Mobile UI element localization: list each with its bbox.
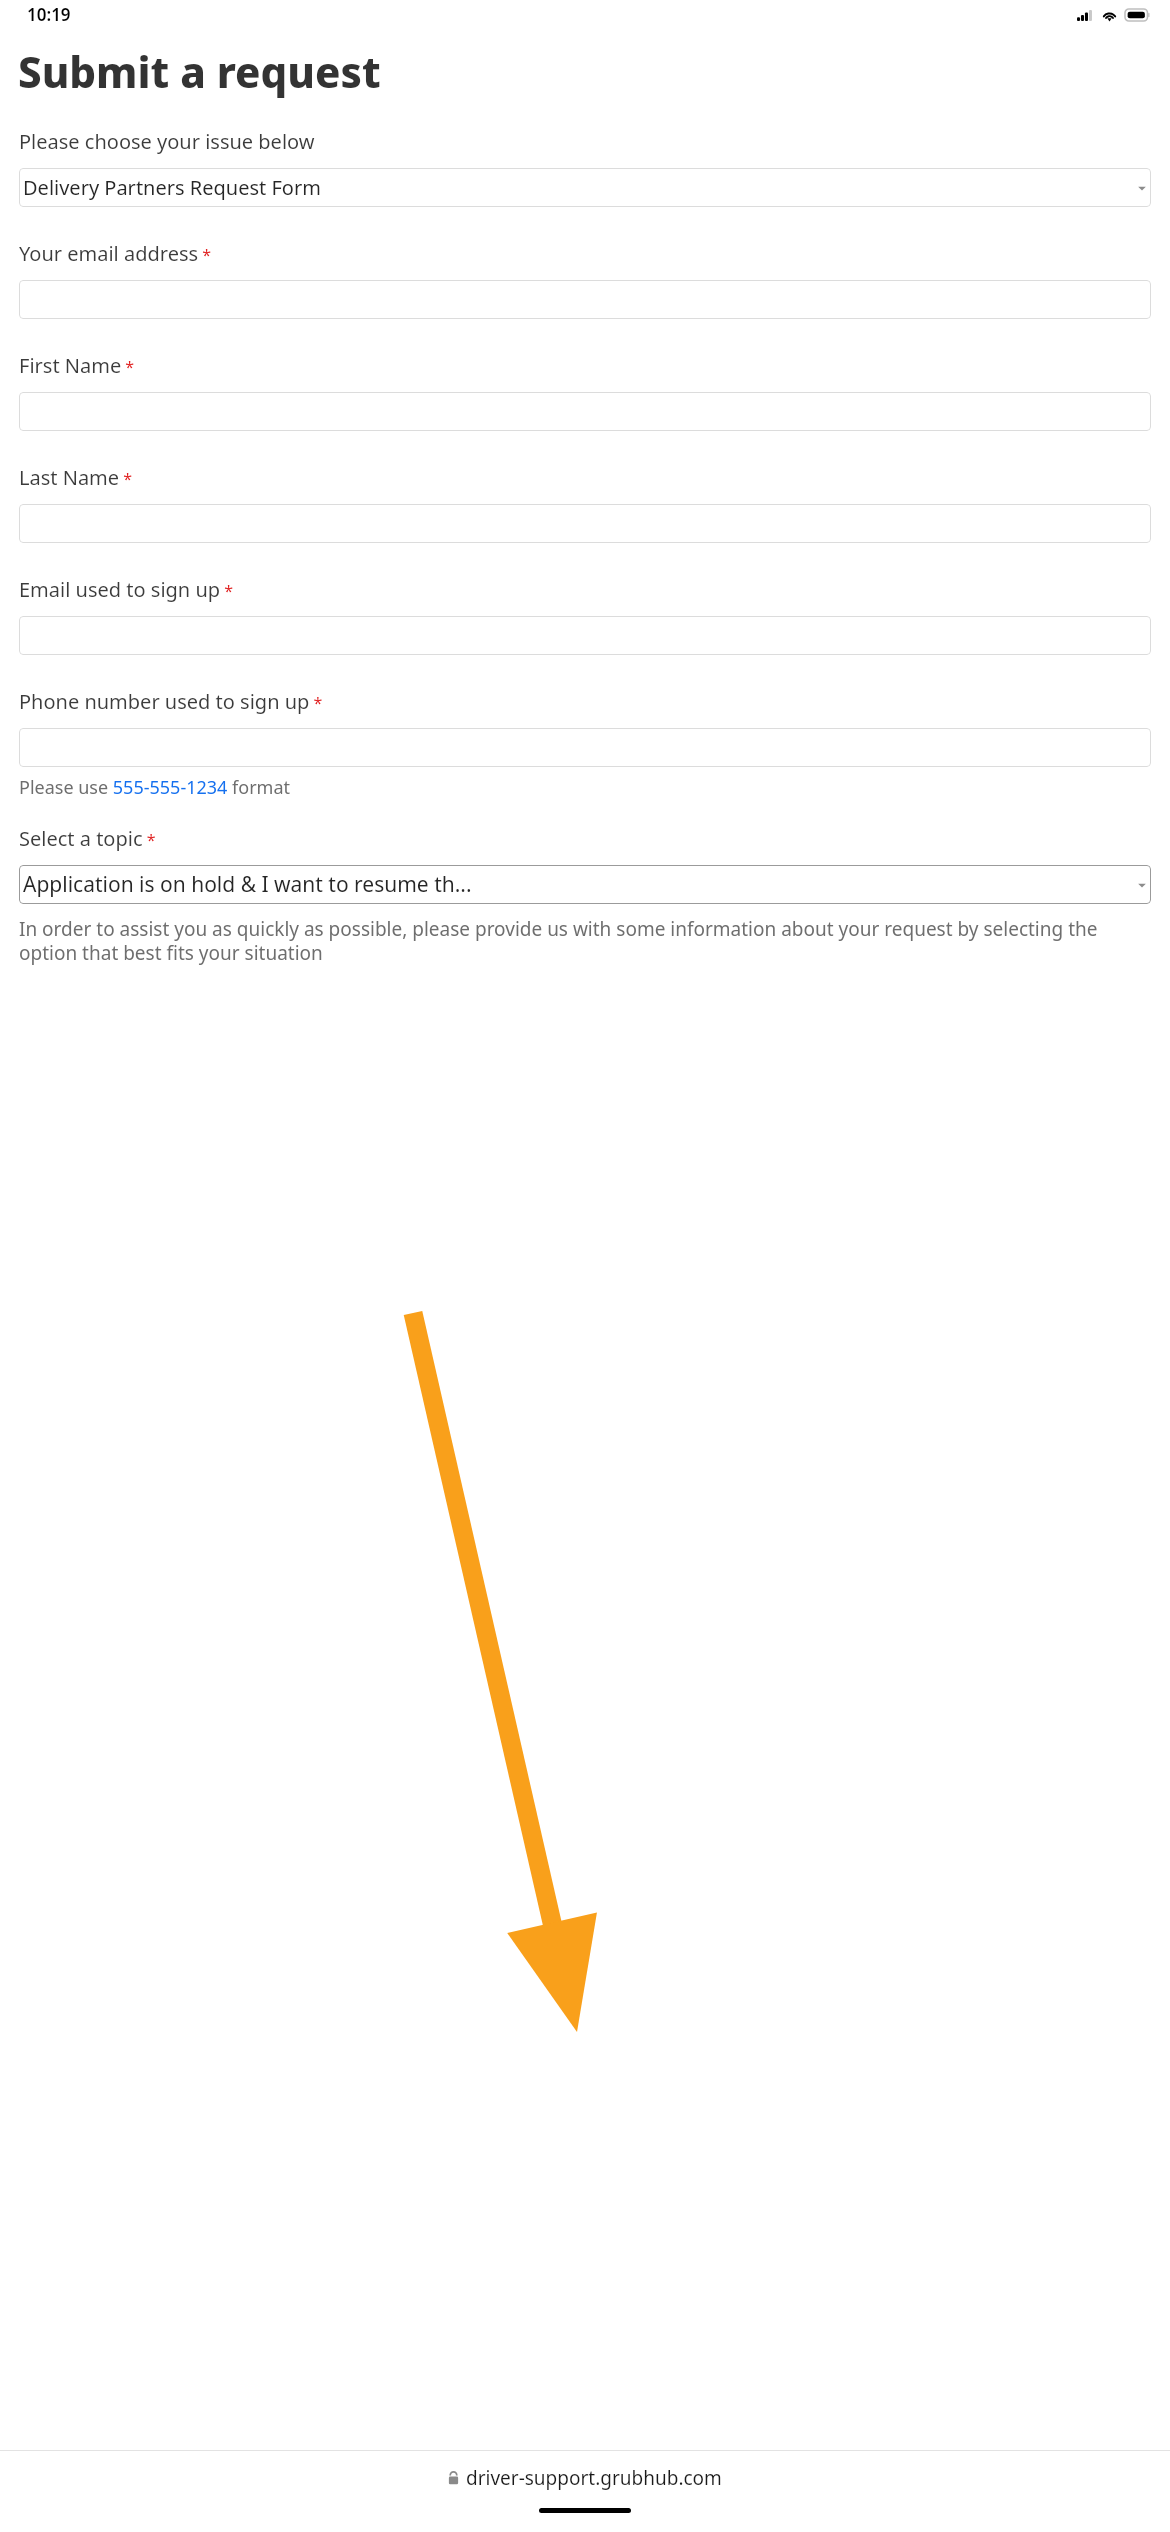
button[interactable] [19,392,1151,431]
staticText: driver-support.grubhub.com [466,2465,722,2491]
staticText: Please choose your issue below [19,128,315,155]
button[interactable] [19,280,1151,319]
staticText: Your email address * [19,240,212,267]
button[interactable]: driver-support.grubhub.com [448,2465,722,2491]
staticText: Email used to sign up * [19,576,234,603]
staticText: In order to assist you as quickly as pos… [19,916,1151,965]
staticText: Application is on hold & I want to resum… [23,870,1137,899]
staticText: Delivery Partners Request Form [23,174,1137,201]
button[interactable] [19,728,1151,767]
button[interactable] [19,504,1151,543]
button[interactable]: Application is on hold & I want to resum… [19,865,1151,904]
staticText: Submit a request [18,43,381,100]
staticText: Please use 555-555-1234 format [19,775,290,800]
staticText: First Name * [19,352,135,379]
staticText: Phone number used to sign up * [19,688,323,715]
button[interactable]: Delivery Partners Request Form [19,168,1151,207]
staticText: 10:19 [27,3,71,26]
staticText: Last Name * [19,464,133,491]
button[interactable] [19,616,1151,655]
staticText: Select a topic * [19,825,156,852]
